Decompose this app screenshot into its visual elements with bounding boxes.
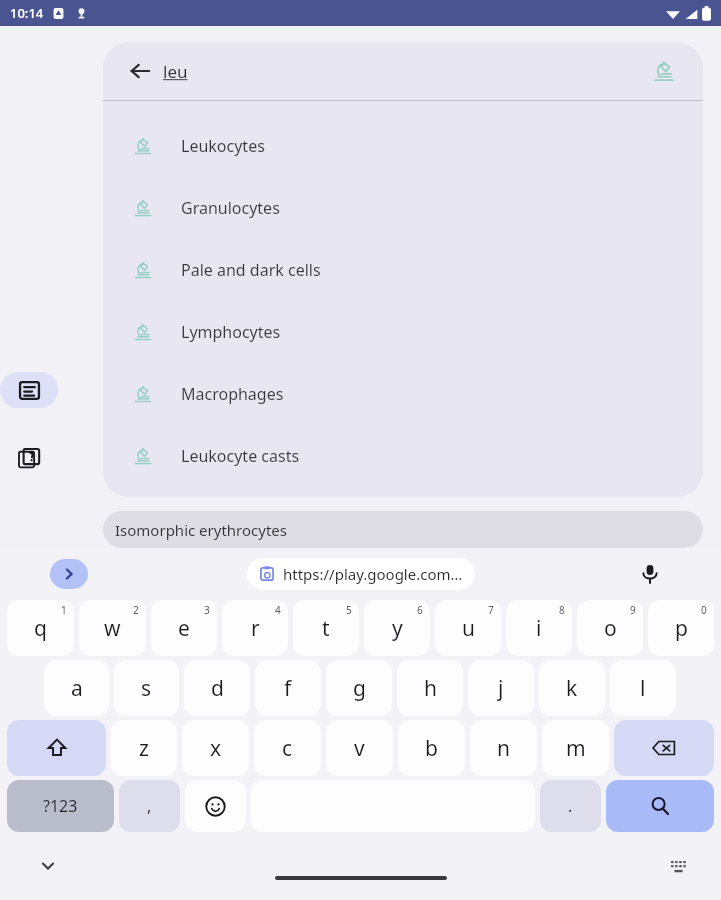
staticText: Macrophages (181, 383, 284, 405)
button[interactable]: a (44, 660, 109, 716)
staticText: s (141, 674, 152, 703)
button[interactable]: Quiz (7, 436, 51, 480)
staticText: a (71, 674, 83, 703)
staticText: f (284, 674, 292, 703)
staticText: 4 (275, 603, 281, 617)
button[interactable]: Granulocytes (103, 177, 703, 239)
staticText: 5 (346, 603, 352, 617)
button[interactable]: k (539, 660, 605, 716)
staticText: k (566, 674, 578, 703)
staticText: i (536, 614, 542, 643)
button[interactable]: Lymphocytes (103, 301, 703, 363)
button[interactable]: n (470, 720, 537, 776)
button[interactable]: Hide keyboard (30, 848, 66, 884)
staticText: Pale and dark cells (181, 259, 321, 281)
staticText: z (139, 734, 149, 763)
button[interactable]: Backspace (614, 720, 714, 776)
button[interactable]: d (184, 660, 250, 716)
button[interactable]: Microscope (649, 56, 679, 86)
button[interactable]: x (182, 720, 249, 776)
button[interactable]: r (222, 600, 288, 656)
staticText: t (322, 614, 330, 643)
button[interactable]: Search (606, 780, 714, 832)
staticText: r (251, 614, 260, 643)
staticText: leu (163, 60, 188, 83)
staticText: y (392, 614, 403, 643)
button[interactable]: v (326, 720, 393, 776)
button[interactable]: s (114, 660, 179, 716)
staticText: m (566, 734, 586, 763)
button[interactable]: Expand suggestions (50, 559, 88, 589)
staticText: 1 (61, 603, 67, 617)
button[interactable]: https://play.google.com… (247, 558, 475, 590)
button[interactable]: Back (103, 42, 703, 100)
staticText: , (147, 795, 152, 817)
staticText: Isomorphic erythrocytes (115, 520, 287, 540)
staticText: 9 (630, 603, 636, 617)
button[interactable]: m (542, 720, 609, 776)
button[interactable]: . (540, 780, 601, 832)
button[interactable]: Back (127, 58, 153, 84)
staticText: q (34, 614, 47, 643)
button[interactable]: Macrophages (103, 363, 703, 425)
button[interactable]: l (610, 660, 676, 716)
button[interactable]: c (254, 720, 321, 776)
staticText: 2 (133, 603, 139, 617)
button[interactable]: p (648, 600, 714, 656)
staticText: . (568, 795, 573, 817)
button[interactable]: Isomorphic erythrocytes (103, 511, 703, 548)
staticText: Leukocytes (181, 135, 265, 157)
staticText: Lymphocytes (181, 321, 281, 343)
button[interactable]: List (0, 372, 58, 408)
button[interactable]: Pale and dark cells (103, 239, 703, 301)
staticText: 7 (488, 603, 494, 617)
button[interactable]: Leukocyte casts (103, 425, 703, 487)
staticText: j (498, 674, 504, 703)
staticText: 3 (204, 603, 210, 617)
staticText: g (353, 674, 366, 703)
staticText: d (211, 674, 224, 703)
staticText: 10:14 (10, 4, 44, 22)
button[interactable]: g (326, 660, 392, 716)
button[interactable]: b (398, 720, 465, 776)
button[interactable]: Emoji (185, 780, 246, 832)
button[interactable]: Voice input (633, 557, 667, 591)
staticText: Leukocyte casts (181, 445, 300, 467)
button[interactable]: i (506, 600, 572, 656)
button[interactable]: o (577, 600, 643, 656)
button[interactable]: y (364, 600, 430, 656)
staticText: v (354, 734, 365, 763)
staticText: p (675, 614, 688, 643)
button[interactable]: f (255, 660, 321, 716)
button[interactable]: q (7, 600, 74, 656)
button[interactable]: j (468, 660, 534, 716)
staticText: b (425, 734, 438, 763)
button[interactable]: Switch keyboard (661, 849, 695, 883)
staticText: https://play.google.com… (283, 564, 463, 584)
staticText: o (604, 614, 617, 643)
button[interactable]: ?123 (7, 780, 114, 832)
staticText: e (178, 614, 190, 643)
staticText: u (462, 614, 475, 643)
button[interactable]: w (79, 600, 146, 656)
button[interactable]: Shift (7, 720, 106, 776)
staticText: 8 (559, 603, 565, 617)
staticText: n (497, 734, 510, 763)
button[interactable]: , (119, 780, 180, 832)
button[interactable]: e (151, 600, 217, 656)
button[interactable]: h (397, 660, 463, 716)
button[interactable]: u (435, 600, 501, 656)
staticText: ?123 (43, 795, 78, 817)
staticText: Granulocytes (181, 197, 280, 219)
button[interactable]: t (293, 600, 359, 656)
staticText: 6 (417, 603, 423, 617)
staticText: h (424, 674, 437, 703)
staticText: w (104, 614, 121, 643)
staticText: c (282, 734, 293, 763)
staticText: l (640, 674, 646, 703)
staticText: x (210, 734, 222, 763)
button[interactable]: z (111, 720, 177, 776)
staticText: 0 (701, 603, 707, 617)
button[interactable]: Leukocytes (103, 115, 703, 177)
